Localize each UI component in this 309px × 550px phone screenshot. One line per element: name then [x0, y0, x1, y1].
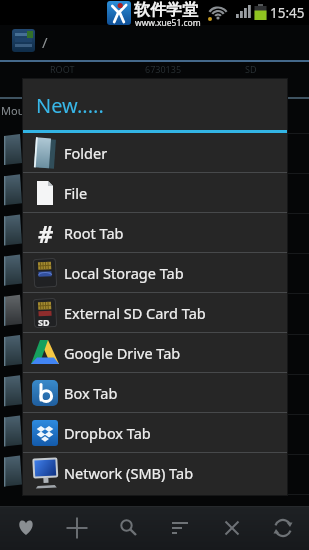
- staticText: ROOT: [50, 63, 75, 75]
- button[interactable]: Google Drive Tab: [23, 333, 287, 373]
- button[interactable]: [211, 507, 253, 549]
- staticText: 15:45: [270, 4, 305, 22]
- staticText: 软件学堂: [134, 0, 198, 20]
- button[interactable]: [159, 507, 201, 549]
- staticText: SD: [38, 316, 50, 328]
- button[interactable]: Box Tab: [23, 373, 287, 413]
- staticText: Root Tab: [64, 223, 124, 243]
- button[interactable]: Folder: [23, 133, 287, 173]
- staticText: 6730135: [145, 63, 182, 75]
- staticText: Local Storage Tab: [64, 263, 184, 283]
- staticText: SD: [245, 63, 257, 75]
- button[interactable]: [108, 507, 150, 549]
- button[interactable]: File: [23, 173, 287, 213]
- staticText: #: [38, 218, 53, 249]
- button[interactable]: [262, 507, 304, 549]
- button[interactable]: [5, 507, 47, 549]
- button[interactable]: [56, 507, 98, 549]
- staticText: /: [42, 32, 48, 52]
- button[interactable]: Network (SMB) Tab: [23, 453, 287, 493]
- button[interactable]: [12, 29, 35, 52]
- staticText: New.....: [36, 92, 104, 119]
- staticText: Dropbox Tab: [64, 423, 151, 443]
- staticText: Mou: [1, 103, 25, 118]
- button[interactable]: Dropbox Tab: [23, 413, 287, 453]
- staticText: File: [64, 183, 88, 203]
- staticText: External SD Card Tab: [64, 303, 206, 323]
- staticText: Box Tab: [64, 383, 118, 403]
- button[interactable]: SD: [23, 293, 287, 333]
- staticText: Folder: [64, 143, 108, 163]
- button[interactable]: Local Storage Tab: [23, 253, 287, 293]
- button[interactable]: #: [23, 213, 287, 253]
- staticText: www.xue51.com: [135, 17, 201, 29]
- staticText: Google Drive Tab: [64, 343, 181, 363]
- staticText: Network (SMB) Tab: [64, 463, 194, 483]
